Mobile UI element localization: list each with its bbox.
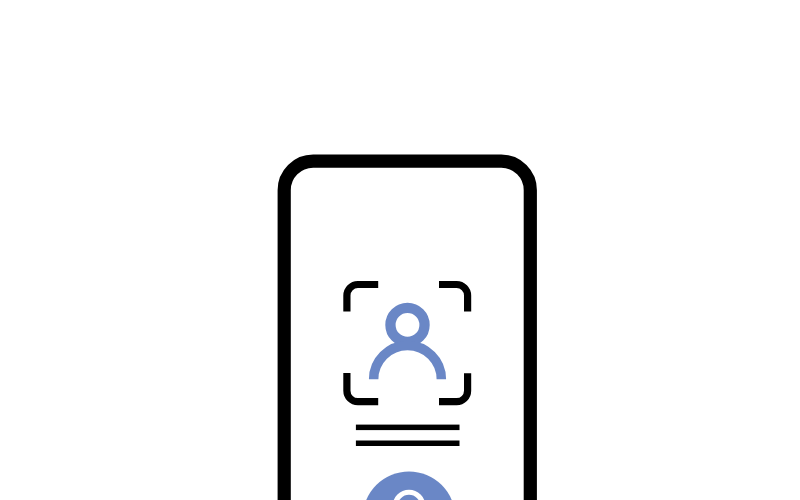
button[interactable]: Face unlock description — [356, 425, 460, 446]
button[interactable]: Scan your face — [339, 277, 475, 409]
button[interactable]: Home button — [363, 472, 456, 500]
